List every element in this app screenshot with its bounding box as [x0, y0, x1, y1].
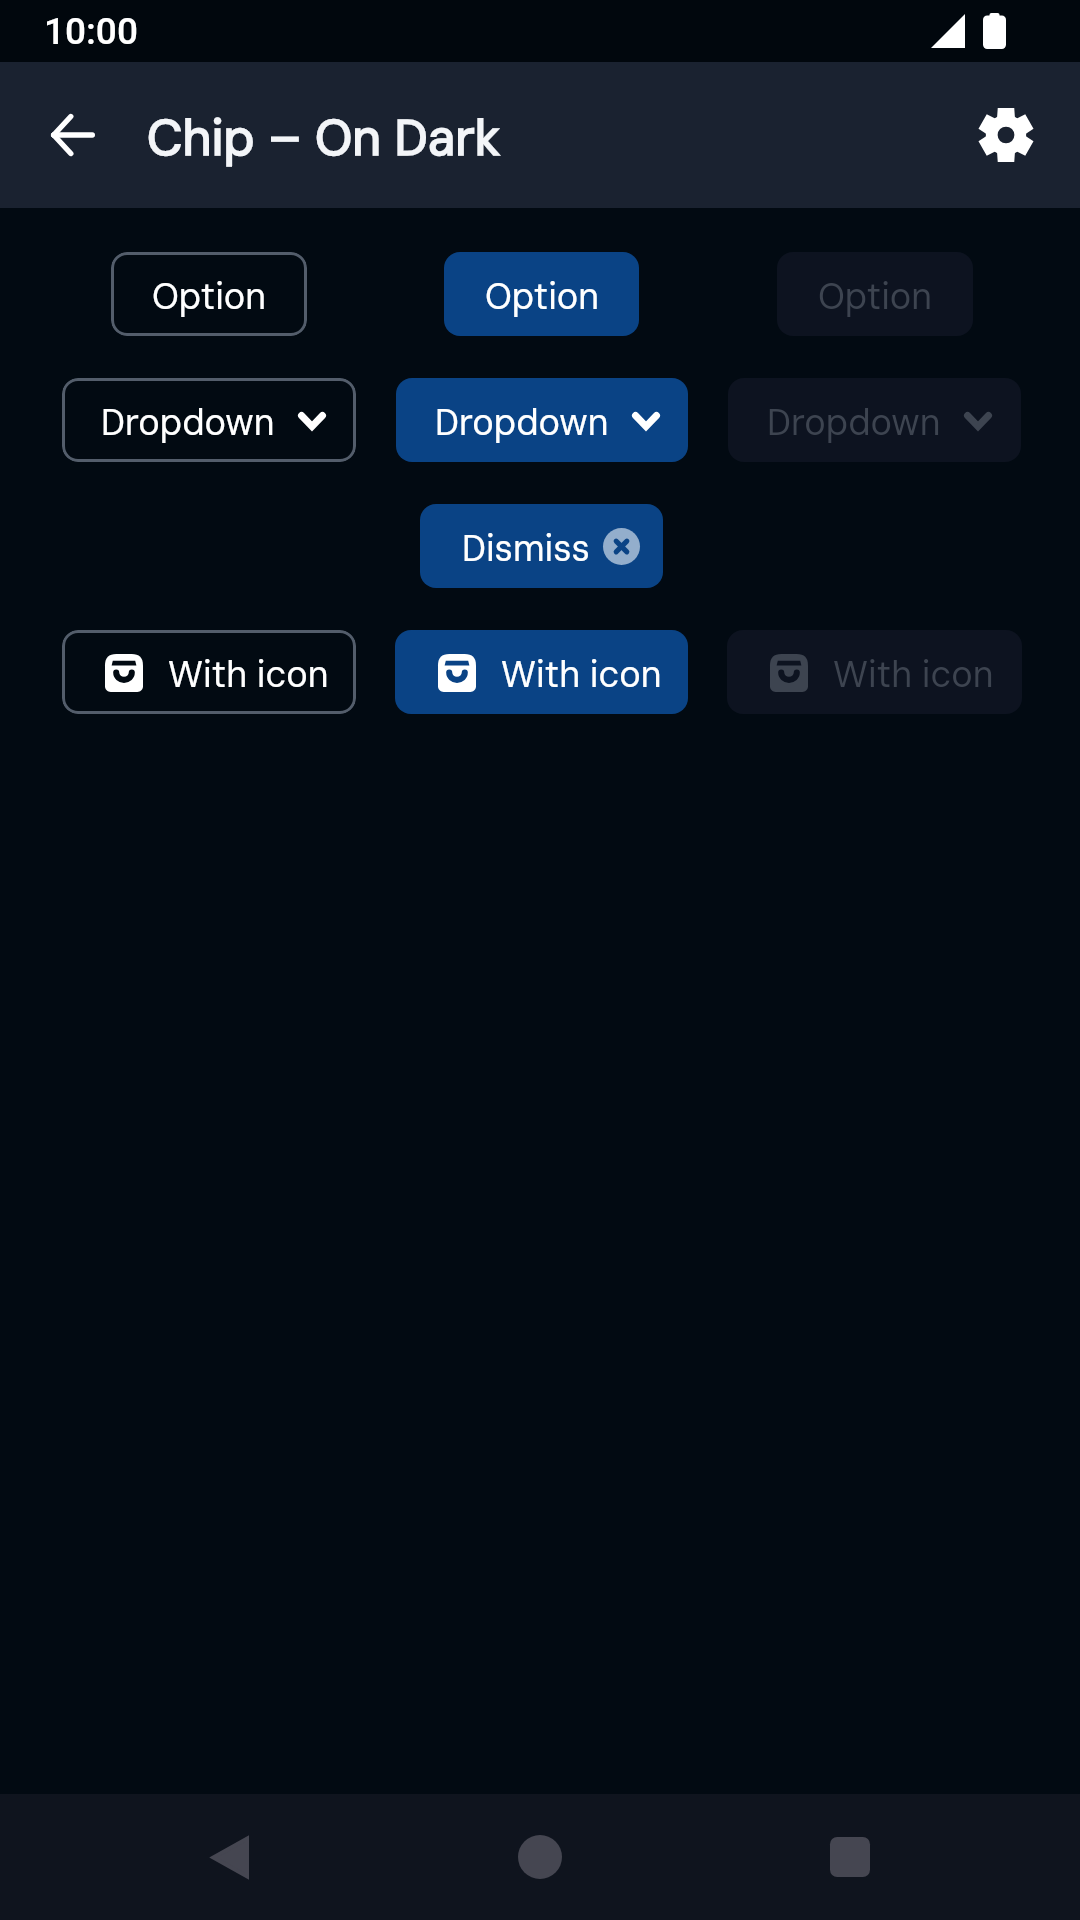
staticText: With icon [168, 651, 329, 698]
staticText: Dropdown [767, 399, 941, 446]
staticText: Dismiss [462, 525, 590, 572]
button[interactable]: Option [777, 252, 973, 336]
button[interactable]: With icon [727, 630, 1022, 714]
button[interactable]: Settings [952, 81, 1060, 189]
staticText: Chip – On Dark [147, 105, 501, 170]
button[interactable]: Option [444, 252, 639, 336]
button[interactable]: Dismiss [420, 504, 663, 588]
button[interactable]: Recent apps [790, 1797, 910, 1917]
button[interactable]: Option [111, 252, 307, 336]
button[interactable]: Dropdown [396, 378, 688, 462]
staticText: Option [152, 273, 267, 320]
staticText: Option [818, 273, 933, 320]
staticText: With icon [501, 651, 662, 698]
staticText: Option [485, 273, 600, 320]
button[interactable]: With icon [395, 630, 688, 714]
button[interactable]: With icon [62, 630, 356, 714]
button[interactable]: Dropdown [62, 378, 356, 462]
button[interactable]: Dropdown [728, 378, 1021, 462]
staticText: With icon [833, 651, 994, 698]
staticText: Dropdown [435, 399, 609, 446]
button[interactable]: Navigate up [23, 85, 123, 185]
button[interactable]: Back [169, 1797, 289, 1917]
button[interactable]: Home [480, 1797, 600, 1917]
staticText: Dropdown [101, 399, 275, 446]
staticText: 10:00 [44, 10, 138, 53]
